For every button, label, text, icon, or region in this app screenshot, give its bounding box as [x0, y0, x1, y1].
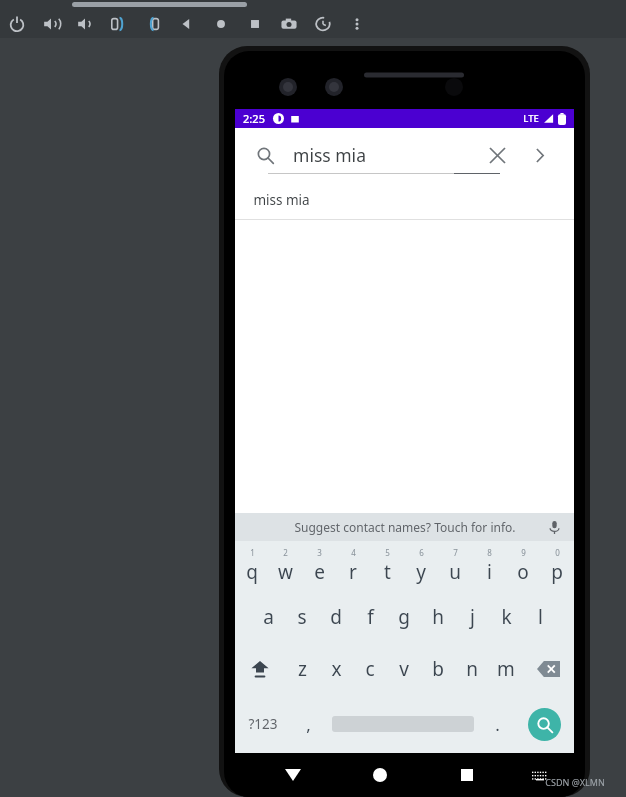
staticText: miss mia — [357, 544, 453, 575]
button[interactable]: Volume down — [68, 10, 102, 38]
staticText: 9 — [521, 547, 526, 558]
staticText: l — [538, 604, 543, 630]
staticText: x — [331, 656, 342, 682]
staticText: 1 — [250, 547, 255, 558]
button[interactable]: s — [285, 591, 319, 643]
staticText: 0 — [555, 547, 560, 558]
staticText: LTE — [523, 112, 539, 125]
button[interactable]: 4 — [336, 541, 370, 591]
button[interactable]: Volume up — [34, 10, 68, 38]
staticText: miss mia — [293, 143, 366, 167]
staticText: u — [449, 559, 461, 585]
button[interactable]: v — [387, 643, 421, 695]
button[interactable]: ?123 — [235, 695, 291, 753]
staticText: w — [278, 559, 293, 585]
button[interactable]: Home — [204, 10, 238, 38]
staticText: , — [306, 713, 311, 736]
staticText: r — [349, 559, 357, 585]
button[interactable]: x — [319, 643, 353, 695]
button[interactable]: Home — [360, 755, 400, 795]
button[interactable]: 2 — [268, 541, 302, 591]
button[interactable]: f — [353, 591, 387, 643]
staticText: 2 — [283, 547, 288, 558]
staticText: y — [416, 559, 426, 585]
staticText: g — [398, 604, 410, 630]
button[interactable]: Rotate left — [102, 10, 136, 38]
staticText: n — [466, 656, 478, 682]
button[interactable]: Overview — [238, 10, 272, 38]
staticText: q — [246, 559, 258, 585]
button[interactable]: n — [455, 643, 489, 695]
staticText: v — [399, 656, 409, 682]
button[interactable]: miss mia — [235, 181, 574, 219]
button[interactable]: Shift — [235, 643, 285, 695]
staticText: 6 — [419, 547, 424, 558]
button[interactable]: Back — [273, 755, 313, 795]
button[interactable]: j — [455, 591, 489, 643]
button[interactable]: m — [489, 643, 523, 695]
staticText: m — [497, 656, 515, 682]
staticText: 3 — [317, 547, 322, 558]
button[interactable]: Recent apps — [447, 755, 487, 795]
staticText: miss mia — [253, 191, 310, 209]
button[interactable]: 7 — [438, 541, 472, 591]
staticText: p — [551, 559, 563, 585]
button[interactable]: Submit search — [522, 138, 556, 172]
staticText: 5 — [385, 547, 390, 558]
button[interactable]: Backspace — [523, 643, 574, 695]
staticText: z — [298, 656, 307, 682]
button[interactable]: d — [319, 591, 353, 643]
staticText: f — [367, 604, 374, 630]
button[interactable]: 1 — [235, 541, 268, 591]
staticText: o — [517, 559, 529, 585]
staticText: 4 — [351, 547, 356, 558]
button[interactable]: 6 — [404, 541, 438, 591]
staticText: 8 — [487, 547, 492, 558]
button[interactable]: More — [340, 10, 374, 38]
button[interactable]: g — [387, 591, 421, 643]
button[interactable]: Clear query — [480, 138, 514, 172]
staticText: 2:25 — [243, 111, 265, 126]
button[interactable]: Switch keyboard — [522, 757, 558, 793]
button[interactable]: k — [489, 591, 523, 643]
staticText: CSDN @XLMN — [545, 776, 605, 788]
staticText: j — [470, 604, 475, 630]
staticText: i — [487, 559, 492, 585]
staticText: h — [432, 604, 444, 630]
button[interactable]: 5 — [370, 541, 404, 591]
staticText: t — [384, 559, 391, 585]
button[interactable]: b — [421, 643, 455, 695]
button[interactable]: Suggest contact names? Touch for info. — [235, 519, 574, 535]
staticText: . — [495, 713, 500, 736]
button[interactable]: Back — [170, 10, 204, 38]
staticText: c — [365, 656, 375, 682]
button[interactable]: 3 — [302, 541, 336, 591]
button[interactable]: Screenshot — [272, 10, 306, 38]
button[interactable]: Power — [0, 10, 34, 38]
staticText: b — [432, 656, 444, 682]
staticText: d — [330, 604, 342, 630]
staticText: s — [297, 604, 307, 630]
button[interactable]: 8 — [472, 541, 506, 591]
button[interactable]: Search — [528, 708, 561, 741]
button[interactable]: History — [306, 10, 340, 38]
button[interactable]: . — [480, 695, 515, 753]
button[interactable]: 9 — [506, 541, 540, 591]
button[interactable]: 0 — [540, 541, 574, 591]
button[interactable]: z — [285, 643, 319, 695]
staticText: e — [314, 559, 325, 585]
button[interactable]: , — [291, 695, 326, 753]
staticText: Suggest contact names? Touch for info. — [294, 519, 516, 535]
button[interactable]: Rotate right — [136, 10, 170, 38]
button[interactable]: a — [251, 591, 285, 643]
button[interactable]: Search — [251, 141, 279, 169]
button[interactable]: c — [353, 643, 387, 695]
staticText: k — [501, 604, 512, 630]
staticText: ?123 — [248, 715, 278, 733]
staticText: a — [263, 604, 274, 630]
button[interactable]: Voice input — [542, 515, 566, 539]
button[interactable]: l — [523, 591, 557, 643]
button[interactable]: Space — [326, 695, 480, 753]
staticText: 7 — [453, 547, 458, 558]
button[interactable]: h — [421, 591, 455, 643]
